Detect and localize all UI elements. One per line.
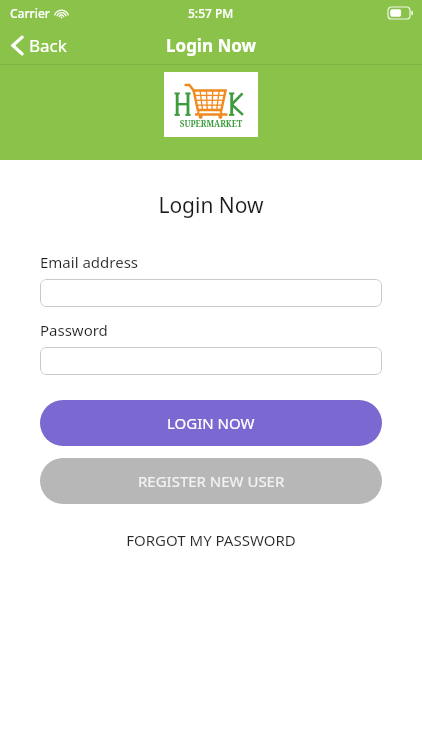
button[interactable] xyxy=(40,279,382,307)
staticText: FORGOT MY PASSWORD xyxy=(40,530,382,550)
staticText: Back xyxy=(29,34,67,57)
staticText: Carrier xyxy=(10,5,50,21)
button[interactable]: LOGIN NOW xyxy=(40,400,382,446)
staticText: Login Now xyxy=(0,191,422,220)
button[interactable]: Back xyxy=(0,28,81,63)
button[interactable]: FORGOT MY PASSWORD xyxy=(40,525,382,555)
staticText: Login Now xyxy=(166,34,257,57)
staticText: Email address xyxy=(40,252,139,272)
staticText: 5:57 PM xyxy=(188,5,234,21)
staticText: LOGIN NOW xyxy=(167,413,255,433)
button[interactable]: REGISTER NEW USER xyxy=(40,458,382,504)
staticText: SUPERMARKET xyxy=(164,118,258,129)
button[interactable] xyxy=(40,347,382,375)
staticText: REGISTER NEW USER xyxy=(138,471,285,491)
staticText: Password xyxy=(40,320,108,340)
